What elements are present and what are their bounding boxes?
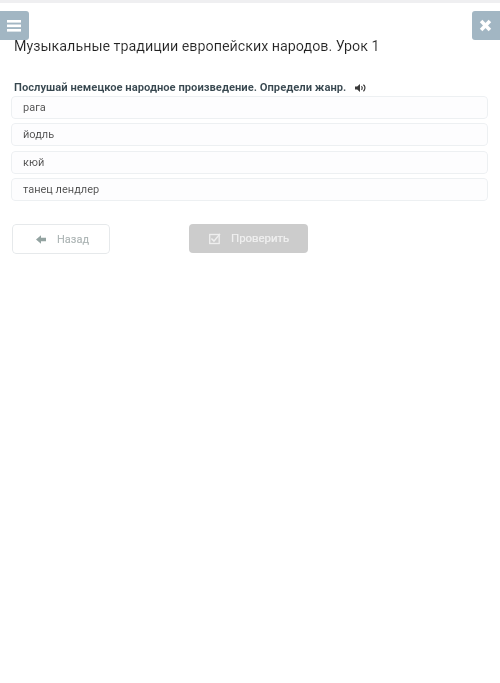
staticText: йодль	[23, 128, 55, 141]
staticText: рага	[23, 101, 46, 114]
button[interactable]: Menu	[0, 11, 29, 40]
staticText: Назад	[57, 233, 90, 246]
button[interactable]: кюй	[11, 151, 488, 174]
staticText: Проверить	[231, 231, 290, 244]
button[interactable]: Проверить	[189, 224, 308, 253]
button[interactable]: рага	[11, 96, 488, 119]
button[interactable]: Назад	[12, 224, 110, 254]
button[interactable]: танец лендлер	[11, 178, 488, 201]
staticText: кюй	[23, 156, 45, 169]
staticText: Музыкальные традиции европейских народов…	[14, 38, 380, 55]
button[interactable]: Play audio	[354, 81, 366, 94]
button[interactable]: Close	[472, 11, 500, 40]
staticText: Послушай немецкое народное произведение.…	[14, 81, 347, 94]
staticText: танец лендлер	[23, 183, 100, 196]
button[interactable]: йодль	[11, 123, 488, 146]
